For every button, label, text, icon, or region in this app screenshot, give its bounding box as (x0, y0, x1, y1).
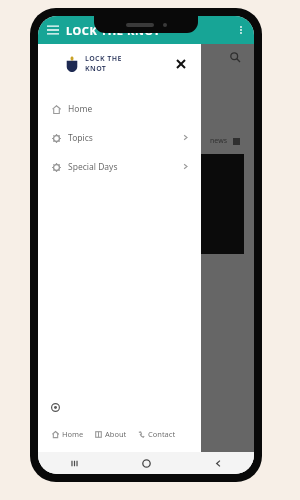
button[interactable]: Topics (38, 123, 201, 152)
button[interactable]: Home (38, 94, 201, 123)
button[interactable]: Home (110, 452, 182, 474)
button[interactable]: Language (51, 398, 69, 416)
staticText: About (105, 429, 127, 439)
staticText: news (210, 136, 227, 146)
button[interactable]: Contact (137, 426, 176, 442)
staticText: Special Days (68, 161, 118, 173)
button[interactable]: Back (182, 452, 254, 474)
button[interactable]: About (94, 426, 127, 442)
staticText: Contact (148, 429, 176, 439)
button[interactable]: Recent apps (38, 452, 110, 474)
staticText: Topics (68, 132, 93, 144)
button[interactable]: Open navigation menu (42, 19, 64, 41)
staticText: LOCK THE KNOT (66, 23, 161, 38)
button[interactable]: More options (231, 20, 251, 40)
staticText: KNOT (85, 64, 107, 74)
button[interactable]: Special Days (38, 152, 201, 181)
staticText: Home (68, 103, 93, 115)
button[interactable]: Home (51, 426, 84, 442)
button[interactable]: Close menu (171, 54, 191, 74)
staticText: Home (62, 429, 84, 439)
staticText: LOCK THE (85, 54, 122, 64)
